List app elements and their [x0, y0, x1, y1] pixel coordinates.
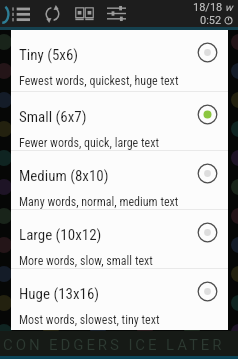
staticText: Many words, normal, medium text: [19, 195, 179, 209]
staticText: Huge (13x16): [19, 285, 100, 303]
staticText: w: [225, 2, 233, 14]
button[interactable]: Large (10x12): [11, 210, 228, 268]
staticText: Medium (8x10): [19, 167, 109, 185]
staticText: CON EDGERS ICE LATER M: [3, 336, 238, 354]
button[interactable]: Word list: [6, 0, 35, 27]
button[interactable]: Medium (8x10): [11, 151, 228, 209]
button[interactable]: Shuffle: [38, 0, 67, 27]
button[interactable]: Tiny (5x6): [11, 30, 228, 91]
button[interactable]: Dictionary: [70, 0, 99, 27]
staticText: Large (10x12): [19, 226, 102, 244]
staticText: Small (6x7): [19, 108, 87, 126]
staticText: 0:52: [200, 14, 224, 27]
button[interactable]: Huge (13x16): [11, 269, 228, 330]
staticText: Fewer words, quick, large text: [19, 136, 159, 150]
staticText: Tiny (5x6): [19, 46, 79, 64]
staticText: More words, slow, small text: [19, 254, 153, 268]
button[interactable]: Settings: [102, 0, 131, 27]
staticText: Most words, slowest, tiny text: [19, 313, 160, 327]
staticText: 18/18: [193, 1, 225, 14]
button[interactable]: Small (6x7): [11, 92, 228, 150]
staticText: Fewest words, quickest, huge text: [19, 74, 179, 88]
